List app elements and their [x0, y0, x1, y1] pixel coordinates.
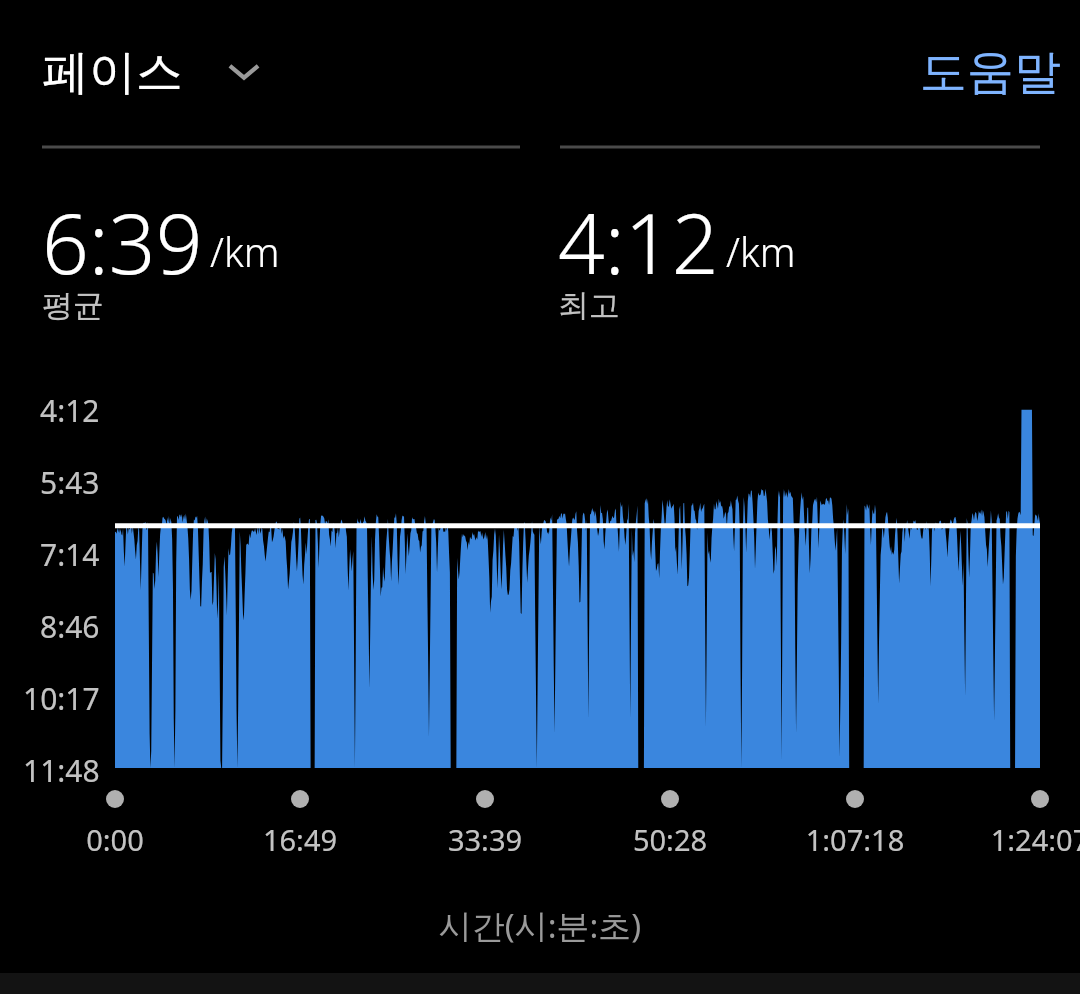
staticText: 8:46 [40, 606, 100, 646]
staticText: 도움말 [920, 43, 1061, 102]
staticText: 4:12 [558, 186, 719, 298]
staticText: 6:39 [42, 186, 203, 298]
staticText: 16:49 [220, 820, 380, 864]
staticText: 시간(시:분:초) [0, 903, 1080, 953]
staticText: 5:43 [40, 462, 100, 502]
staticText: 최고 [558, 286, 620, 325]
staticText: 7:14 [40, 534, 100, 574]
staticText: 1:07:18 [775, 820, 935, 864]
staticText: 4:12 [40, 390, 100, 430]
button[interactable]: 도움말 [920, 43, 1061, 102]
button[interactable]: Change metric [222, 50, 266, 94]
staticText: 33:39 [405, 820, 565, 864]
staticText: 0:00 [35, 820, 195, 864]
button[interactable]: 6:39 [42, 186, 512, 336]
staticText: 11:48 [23, 750, 100, 790]
staticText: 10:17 [23, 678, 100, 718]
button[interactable]: 4:12 [558, 186, 1028, 336]
staticText: /km [210, 224, 280, 278]
staticText: /km [726, 224, 796, 278]
staticText: 50:28 [590, 820, 750, 864]
staticText: 1:24:07 [960, 820, 1080, 864]
button[interactable]: 페이스 [42, 43, 183, 102]
staticText: 페이스 [42, 43, 183, 102]
staticText: 평균 [42, 286, 104, 325]
